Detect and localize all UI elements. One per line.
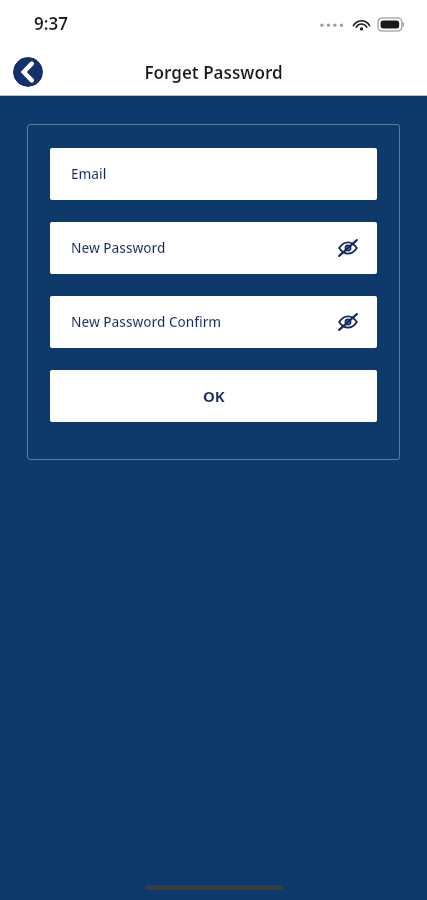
staticText: 9:37	[34, 12, 68, 35]
staticText: New Password Confirm	[71, 313, 222, 331]
staticText: OK	[203, 386, 225, 406]
button[interactable]: OK	[50, 370, 377, 422]
button[interactable]: New Password Confirm	[50, 296, 377, 348]
staticText: Email	[71, 165, 107, 183]
button[interactable]: Email	[50, 148, 377, 200]
staticText: New Password	[71, 239, 166, 257]
button[interactable]: Back	[13, 57, 43, 87]
staticText: Forget Password	[144, 61, 283, 84]
button[interactable]: Show password	[333, 307, 363, 337]
button[interactable]: Show password	[333, 233, 363, 263]
button[interactable]: New Password	[50, 222, 377, 274]
